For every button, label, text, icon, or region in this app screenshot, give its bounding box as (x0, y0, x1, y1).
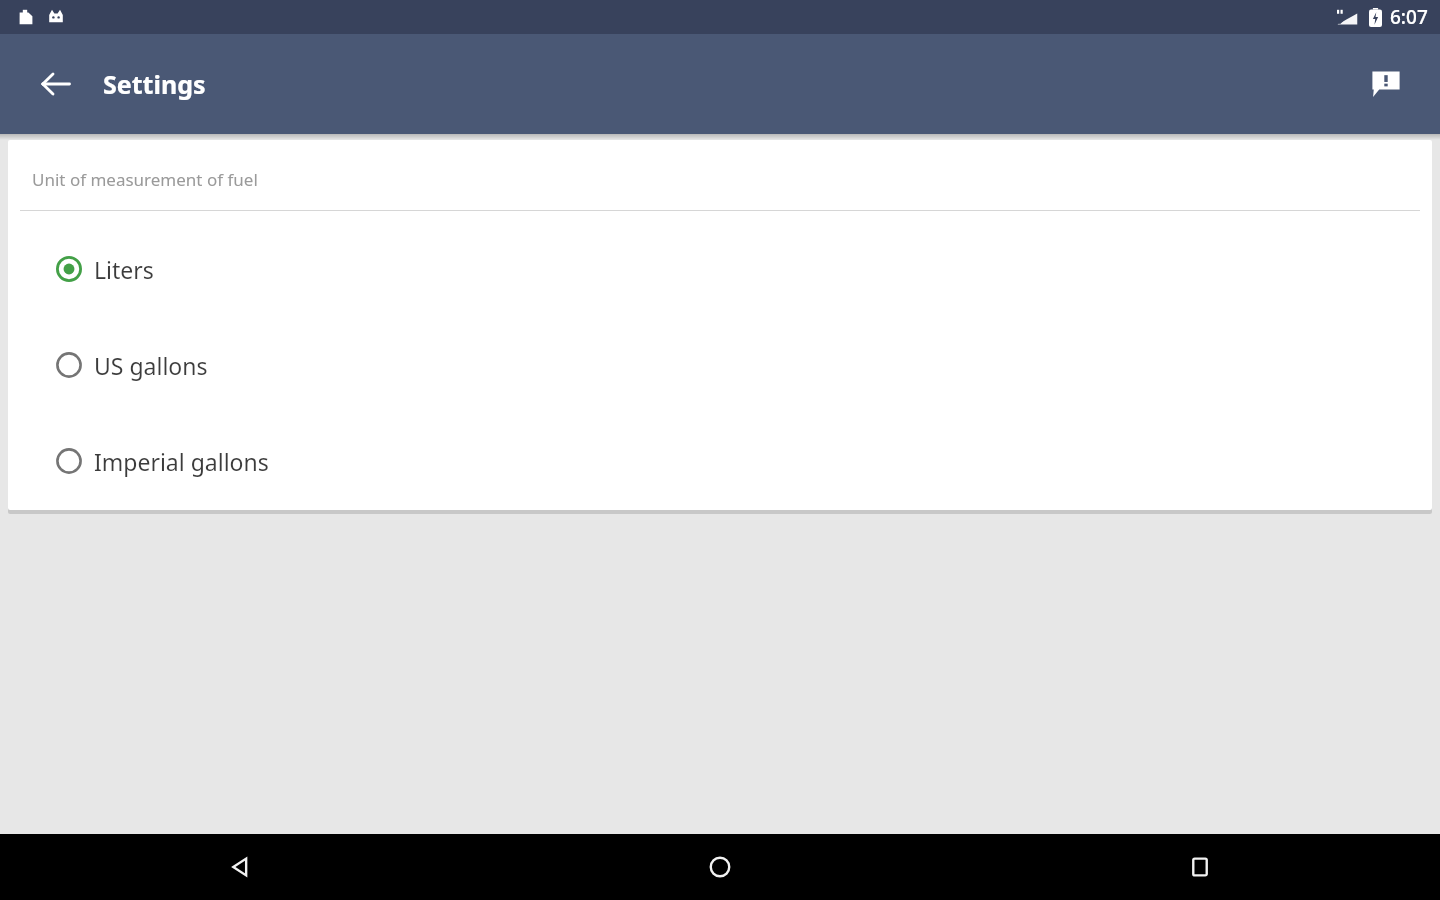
button[interactable]: Back (22, 50, 90, 118)
staticText: Liters (94, 254, 154, 285)
staticText: US gallons (94, 350, 208, 381)
staticText: Imperial gallons (94, 446, 269, 477)
staticText: Settings (103, 67, 206, 101)
button[interactable]: Imperial gallons (8, 413, 1432, 509)
staticText: 6:07 (1390, 4, 1428, 30)
button[interactable]: Back (0, 834, 480, 900)
staticText: Unit of measurement of fuel (32, 168, 258, 191)
button[interactable]: Home (480, 834, 960, 900)
button[interactable]: Feedback (1354, 52, 1418, 116)
button[interactable]: Liters (8, 221, 1432, 317)
button[interactable]: US gallons (8, 317, 1432, 413)
button[interactable]: Recent apps (960, 834, 1440, 900)
